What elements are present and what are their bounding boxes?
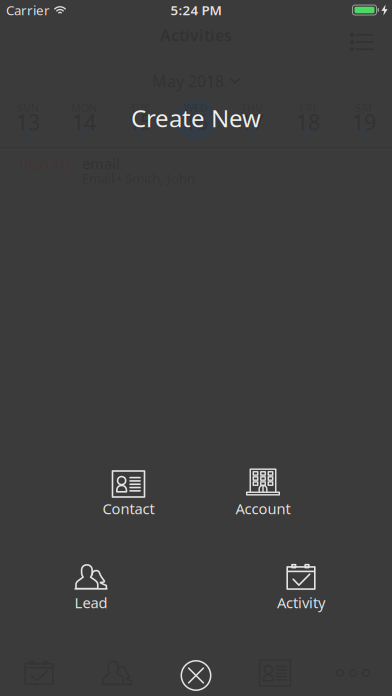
staticText: Activity xyxy=(277,593,325,612)
staticText: 15 xyxy=(128,108,152,136)
button[interactable]: THU xyxy=(224,98,280,140)
staticText: THU xyxy=(241,100,263,115)
staticText: 17 xyxy=(240,108,264,136)
staticText: Account xyxy=(235,499,290,518)
staticText: 16 xyxy=(184,108,208,136)
staticText: Activities xyxy=(160,24,232,46)
staticText: 14 xyxy=(72,108,96,136)
staticText: Contact xyxy=(102,499,154,518)
button[interactable]: Account xyxy=(217,469,309,515)
staticText: Create New xyxy=(131,102,261,134)
button[interactable]: May 2018 xyxy=(152,74,240,88)
button[interactable]: Close xyxy=(166,656,226,695)
button[interactable]: WED xyxy=(168,98,224,140)
button[interactable]: Activity xyxy=(255,563,347,609)
staticText: 19 xyxy=(352,108,376,136)
staticText: 18 xyxy=(296,108,320,136)
button[interactable]: TUE xyxy=(112,98,168,140)
staticText: Lead xyxy=(74,593,107,612)
staticText: 13 xyxy=(16,108,40,136)
button[interactable]: Lead xyxy=(45,563,137,609)
staticText: 5:24 PM xyxy=(170,1,221,19)
button[interactable]: Contact xyxy=(82,469,174,515)
staticText: TUE xyxy=(130,100,150,115)
staticText: WED xyxy=(184,100,208,115)
staticText: Carrier xyxy=(6,1,50,19)
